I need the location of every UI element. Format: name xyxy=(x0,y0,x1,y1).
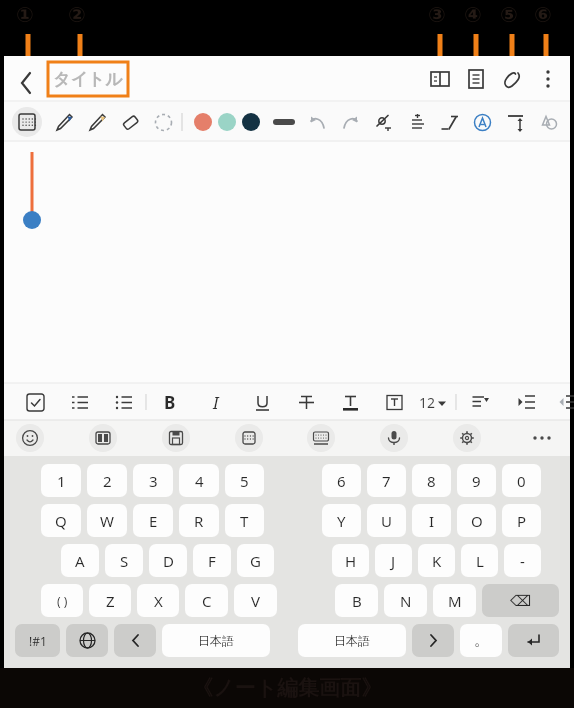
button[interactable]: M xyxy=(433,584,476,617)
button[interactable]: Convert handwriting xyxy=(367,106,400,139)
button[interactable]: Stickers xyxy=(89,424,117,452)
button[interactable]: Smart select xyxy=(466,106,499,139)
button[interactable]: Straighten xyxy=(400,106,433,139)
button[interactable]: Alignment xyxy=(467,389,493,415)
button[interactable]: Text mode xyxy=(433,106,466,139)
button[interactable]: A xyxy=(61,544,99,577)
button[interactable]: X xyxy=(137,584,179,617)
staticText: ② xyxy=(68,3,86,27)
staticText: 3 xyxy=(149,471,158,491)
button[interactable]: Handwriting xyxy=(307,424,335,452)
button[interactable]: E xyxy=(133,504,173,537)
button[interactable]: S xyxy=(105,544,143,577)
button[interactable]: Previous xyxy=(114,624,156,657)
button[interactable]: Y xyxy=(322,504,361,537)
button[interactable]: Enter xyxy=(508,624,559,657)
button[interactable]: Backspace xyxy=(482,584,559,617)
button[interactable]: Z xyxy=(89,584,131,617)
button[interactable]: G xyxy=(237,544,274,577)
button[interactable]: - xyxy=(504,544,541,577)
button[interactable]: Decrease indent xyxy=(559,389,562,415)
staticText: 日本語 xyxy=(334,633,370,648)
button[interactable]: Underline xyxy=(249,389,275,415)
button[interactable]: O xyxy=(457,504,496,537)
button[interactable]: W xyxy=(87,504,127,537)
staticText: 7 xyxy=(382,471,391,491)
button[interactable]: Ink colour xyxy=(194,113,212,131)
button[interactable]: タイトル xyxy=(48,62,128,96)
button[interactable]: Bulleted list xyxy=(110,389,136,415)
button[interactable]: B xyxy=(335,584,378,617)
button[interactable]: Attach file xyxy=(494,61,530,97)
button[interactable]: V xyxy=(234,584,277,617)
button[interactable]: Keyboard settings xyxy=(453,424,481,452)
button[interactable]: Highlighter xyxy=(81,106,114,139)
button[interactable]: Highlight xyxy=(381,389,407,415)
button[interactable]: Reading view xyxy=(422,61,458,97)
button[interactable]: Checklist xyxy=(22,389,48,415)
button[interactable]: 0 xyxy=(502,464,541,497)
button[interactable]: 12 xyxy=(419,387,446,417)
button[interactable]: 3 xyxy=(133,464,173,497)
button[interactable]: 9 xyxy=(457,464,496,497)
button[interactable]: 8 xyxy=(412,464,451,497)
button[interactable]: H xyxy=(332,544,369,577)
button[interactable]: Split keyboard xyxy=(235,424,263,452)
button[interactable]: Italic xyxy=(203,389,229,415)
button[interactable]: Increase indent xyxy=(513,389,539,415)
button[interactable]: Note view xyxy=(458,61,494,97)
button[interactable]: I xyxy=(412,504,451,537)
button[interactable]: C xyxy=(185,584,228,617)
button[interactable]: Numbered list xyxy=(66,389,92,415)
button[interactable]: Change language xyxy=(66,624,108,657)
button[interactable]: More keyboard options xyxy=(526,422,558,454)
button[interactable]: Bold xyxy=(157,389,183,415)
button[interactable]: Q xyxy=(41,504,81,537)
button[interactable]: Lasso select xyxy=(147,106,180,139)
button[interactable]: K xyxy=(418,544,455,577)
button[interactable]: Eraser xyxy=(114,106,147,139)
button[interactable]: N xyxy=(384,584,427,617)
button[interactable]: 4 xyxy=(179,464,219,497)
button[interactable]: Strikethrough xyxy=(293,389,319,415)
button[interactable]: 6 xyxy=(322,464,361,497)
button[interactable]: D xyxy=(149,544,187,577)
button[interactable]: R xyxy=(179,504,219,537)
button[interactable]: U xyxy=(367,504,406,537)
button[interactable]: 。 xyxy=(460,624,502,657)
button[interactable]: Text colour xyxy=(337,389,363,415)
staticText: I xyxy=(213,391,219,414)
button[interactable]: 2 xyxy=(87,464,127,497)
button[interactable]: Ink colour xyxy=(218,113,236,131)
button[interactable]: Emoji xyxy=(16,424,44,452)
button[interactable]: Next xyxy=(412,624,454,657)
staticText: 6 xyxy=(337,471,346,491)
button[interactable]: Voice input xyxy=(380,424,408,452)
button[interactable]: ( ) xyxy=(41,584,83,617)
button[interactable]: Undo xyxy=(301,106,334,139)
button[interactable]: Clipboard xyxy=(162,424,190,452)
button[interactable]: 7 xyxy=(367,464,406,497)
staticText: 2 xyxy=(103,471,112,491)
button[interactable]: P xyxy=(502,504,541,537)
button[interactable]: 日本語 xyxy=(162,624,270,657)
button[interactable]: Keyboard input xyxy=(12,107,42,137)
button[interactable]: 1 xyxy=(41,464,81,497)
button[interactable]: Text size xyxy=(499,106,532,139)
button[interactable]: Ink colour xyxy=(242,113,260,131)
button[interactable]: Pen xyxy=(48,106,81,139)
button[interactable]: L xyxy=(461,544,498,577)
staticText: 8 xyxy=(427,471,436,491)
button[interactable]: Shapes xyxy=(532,106,565,139)
button[interactable]: F xyxy=(193,544,231,577)
button[interactable]: Redo xyxy=(334,106,367,139)
button[interactable]: Symbols xyxy=(15,624,60,657)
button[interactable]: More options xyxy=(530,61,566,97)
button[interactable]: J xyxy=(375,544,412,577)
button[interactable]: Back xyxy=(14,67,40,93)
staticText: E xyxy=(149,511,158,531)
button[interactable]: T xyxy=(225,504,264,537)
button[interactable]: 5 xyxy=(225,464,264,497)
button[interactable]: 日本語 xyxy=(298,624,406,657)
button[interactable]: Stroke width xyxy=(269,107,299,137)
